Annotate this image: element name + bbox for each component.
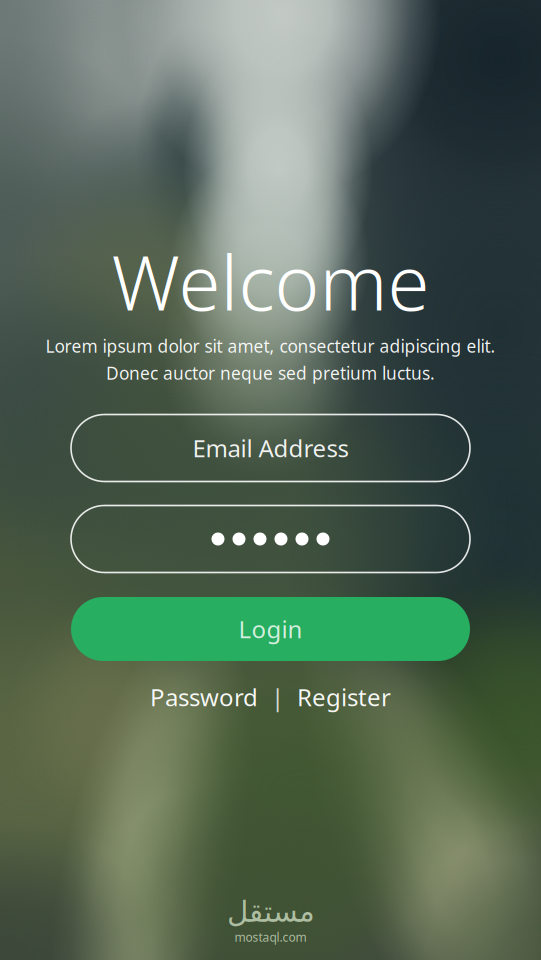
staticText: Email Address (192, 432, 348, 464)
staticText: Donec auctor neque sed pretium luctus. (106, 361, 435, 384)
button[interactable]: Password (71, 505, 470, 572)
staticText: mostaql.com (234, 929, 306, 945)
staticText: Password (150, 681, 258, 713)
button[interactable]: Register (284, 681, 404, 713)
button[interactable]: Login (71, 597, 470, 661)
staticText: Welcome (111, 230, 429, 331)
staticText: مستقل (226, 895, 314, 928)
button[interactable]: Email Address (71, 414, 470, 481)
staticText: Register (297, 681, 391, 713)
button[interactable]: Password (137, 681, 271, 713)
staticText: Lorem ipsum dolor sit amet, consectetur … (45, 334, 495, 357)
staticText: | (271, 681, 284, 713)
staticText: Login (238, 613, 302, 645)
